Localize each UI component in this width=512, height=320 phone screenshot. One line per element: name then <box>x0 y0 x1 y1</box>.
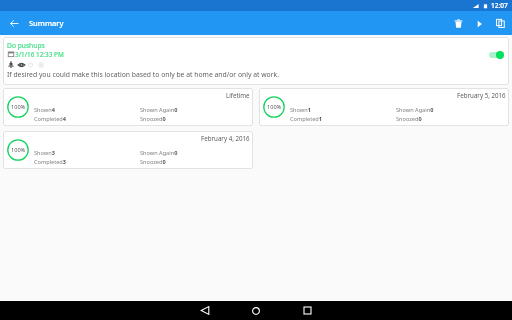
staticText: Lifetime <box>226 91 250 99</box>
staticText: 3/1/16 12:33 PM <box>15 50 64 58</box>
staticText: Completed3 <box>34 158 67 166</box>
staticText: Shown1 <box>290 106 311 114</box>
staticText: Summary <box>29 18 64 28</box>
button[interactable]: Home <box>238 301 274 320</box>
staticText: February 4, 2016 <box>201 134 250 142</box>
staticText: Shown Again0 <box>140 149 178 157</box>
button[interactable]: Lifetime <box>3 88 253 126</box>
staticText: Shown Again0 <box>396 106 434 114</box>
button[interactable]: Recent apps <box>289 301 325 320</box>
staticText: Completed1 <box>290 115 323 123</box>
staticText: Snoozed0 <box>396 115 422 123</box>
staticText: 100% <box>267 103 282 111</box>
staticText: 12:07 <box>491 1 508 10</box>
button[interactable]: February 4, 2016 <box>3 131 253 169</box>
button[interactable]: Back <box>3 12 26 35</box>
staticText: February 5, 2016 <box>457 91 506 99</box>
button[interactable]: February 5, 2016 <box>259 88 509 126</box>
staticText: Snoozed0 <box>140 115 166 123</box>
button[interactable]: Do pushups <box>3 37 509 85</box>
button[interactable]: Play <box>469 13 490 34</box>
staticText: Shown Again0 <box>140 106 178 114</box>
button[interactable]: Copy <box>490 13 511 34</box>
button[interactable]: Delete <box>448 13 469 34</box>
staticText: 100% <box>11 146 26 154</box>
staticText: Completed4 <box>34 115 67 123</box>
staticText: 100% <box>11 103 26 111</box>
staticText: Snoozed0 <box>140 158 166 166</box>
button[interactable]: Enabled toggle <box>486 49 504 60</box>
button[interactable]: Back <box>187 301 223 320</box>
staticText: Shown4 <box>34 106 55 114</box>
staticText: Shown3 <box>34 149 55 157</box>
staticText: Do pushups <box>7 41 45 50</box>
staticText: If desired you could make this location … <box>7 70 279 79</box>
